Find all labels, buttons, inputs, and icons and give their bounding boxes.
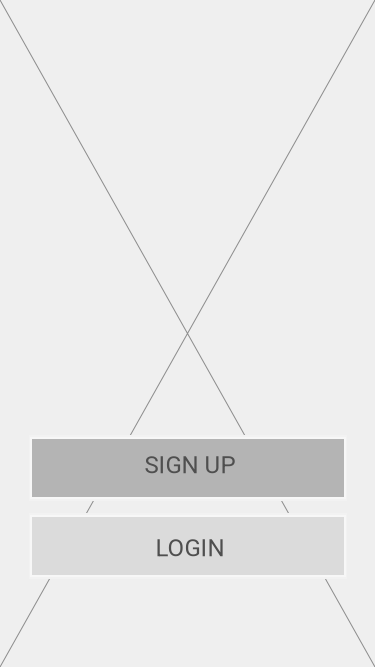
button[interactable]: SIGN UP (29, 435, 347, 501)
button[interactable]: LOGIN (29, 513, 347, 579)
staticText: LOGIN (155, 534, 224, 562)
staticText: SIGN UP (144, 451, 235, 479)
